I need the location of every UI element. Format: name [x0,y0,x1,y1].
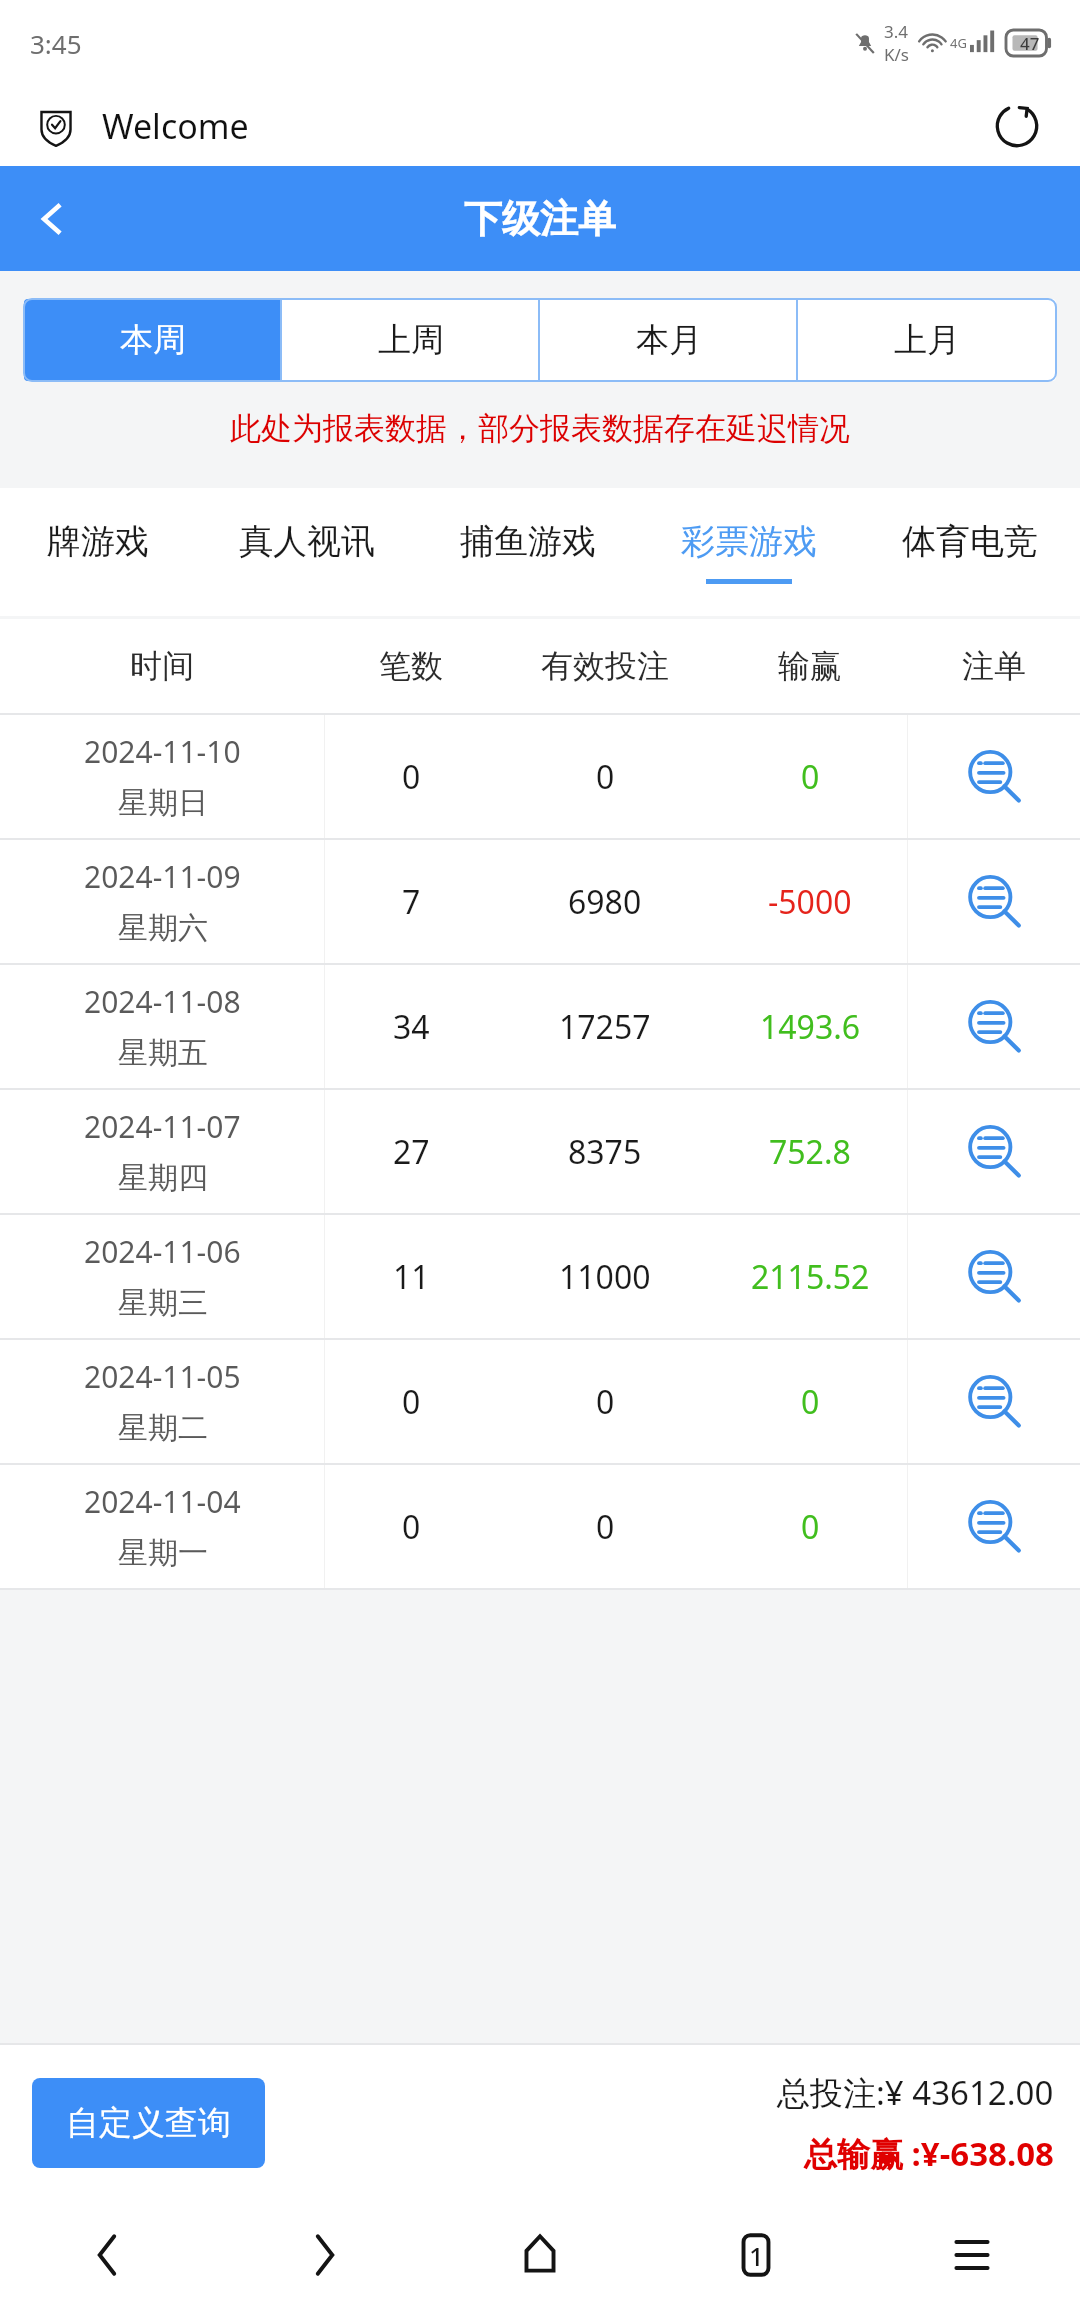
staticText: 0 [801,1505,820,1549]
button[interactable]: View bet details [908,965,1080,1088]
staticText: 6980 [568,880,642,924]
button[interactable]: 2024-11-10 [0,715,1080,838]
staticText: 上周 [378,319,444,361]
staticText: 0 [596,755,615,799]
button[interactable]: 2024-11-04 [0,1465,1080,1588]
staticText: 8375 [568,1130,642,1174]
button[interactable]: 2024-11-06 [0,1215,1080,1338]
button[interactable]: 彩票游戏 [638,488,859,616]
staticText: 0 [402,755,421,799]
staticText: 752.8 [769,1130,851,1174]
staticText: 真人视讯 [239,520,375,563]
button[interactable]: View bet details [908,1215,1080,1338]
button[interactable]: Tabs [648,2200,864,2310]
staticText: 总输赢 :¥-638.08 [804,2131,1054,2176]
button[interactable]: Back [0,2200,216,2310]
staticText: 17257 [559,1005,651,1049]
staticText: Welcome [102,103,249,149]
staticText: 2024-11-06 [84,1231,241,1272]
staticText: 0 [596,1380,615,1424]
button[interactable]: View bet details [908,715,1080,838]
button[interactable]: View bet details [908,840,1080,963]
staticText: 3:45 [30,26,82,61]
button[interactable]: Home [432,2200,648,2310]
button[interactable]: View bet details [908,1465,1080,1588]
staticText: 0 [596,1505,615,1549]
staticText: 4G [950,34,967,52]
staticText: 0 [402,1380,421,1424]
staticText: 上月 [894,319,960,361]
staticText: 2024-11-10 [84,731,241,772]
staticText: 此处为报表数据，部分报表数据存在延迟情况 [230,409,850,448]
staticText: 7 [402,880,421,924]
staticText: 时间 [130,646,194,686]
button[interactable]: Refresh [982,91,1052,161]
button[interactable]: 自定义查询 [32,2078,265,2168]
button[interactable]: View bet details [908,1090,1080,1213]
staticText: 0 [402,1505,421,1549]
staticText: 本月 [636,319,702,361]
button[interactable]: 真人视讯 [196,488,417,616]
button[interactable]: Menu [864,2200,1080,2310]
staticText: 1493.6 [760,1005,861,1049]
staticText: 0 [801,755,820,799]
staticText: 总投注:¥ 43612.00 [777,2070,1054,2115]
staticText: 星期六 [118,909,208,947]
staticText: 注单 [962,646,1026,686]
staticText: 星期五 [118,1034,208,1072]
staticText: 星期三 [118,1284,208,1322]
staticText: 1 [749,2238,764,2273]
button[interactable]: View bet details [908,1340,1080,1463]
staticText: 2024-11-04 [84,1481,241,1522]
staticText: 27 [393,1130,430,1174]
staticText: 体育电竞 [902,520,1038,563]
staticText: 2024-11-05 [84,1356,241,1397]
button[interactable]: 本周 [24,299,282,381]
button[interactable]: 捕鱼游戏 [417,488,638,616]
staticText: 自定义查询 [66,2102,231,2144]
staticText: 11000 [559,1255,651,1299]
staticText: 2024-11-08 [84,981,241,1022]
button[interactable]: 本月 [540,299,798,381]
staticText: 星期四 [118,1159,208,1197]
staticText: 2115.52 [751,1255,870,1299]
staticText: 牌游戏 [47,520,149,563]
button[interactable]: 2024-11-05 [0,1340,1080,1463]
staticText: 2024-11-07 [84,1106,241,1147]
staticText: 3.4 [884,20,909,43]
button[interactable]: 上月 [798,299,1056,381]
button[interactable]: Forward [216,2200,432,2310]
staticText: 0 [801,1380,820,1424]
staticText: 2024-11-09 [84,856,241,897]
staticText: 47 [1020,32,1040,55]
staticText: 34 [393,1005,430,1049]
button[interactable]: 2024-11-08 [0,965,1080,1088]
staticText: 笔数 [379,646,443,686]
staticText: K/s [884,43,909,66]
button[interactable]: 牌游戏 [0,488,196,616]
staticText: 下级注单 [464,195,616,243]
button[interactable]: 2024-11-07 [0,1090,1080,1213]
button[interactable]: 上周 [282,299,540,381]
staticText: 有效投注 [541,646,669,686]
staticText: 星期日 [118,784,208,822]
staticText: -5000 [768,880,852,924]
staticText: 11 [393,1255,430,1299]
button[interactable]: 2024-11-09 [0,840,1080,963]
staticText: 本周 [120,319,186,361]
staticText: 捕鱼游戏 [460,520,596,563]
button[interactable]: 体育电竞 [859,488,1080,616]
button[interactable]: Back [10,177,94,261]
staticText: 星期二 [118,1409,208,1447]
staticText: 输赢 [778,646,842,686]
staticText: 星期一 [118,1534,208,1572]
staticText: 彩票游戏 [681,520,817,563]
